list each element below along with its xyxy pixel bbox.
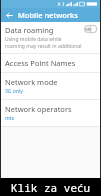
staticText: Data roaming — [5, 25, 54, 35]
button[interactable]: Back — [4, 10, 15, 21]
staticText: 3G only — [5, 88, 23, 95]
staticText: Network operators — [5, 104, 72, 114]
button[interactable]: Network operators — [1, 100, 100, 126]
staticText: Access Point Names — [5, 58, 76, 68]
staticText: Network mode — [5, 77, 58, 87]
button[interactable]: Data roaming — [1, 22, 100, 53]
button[interactable]: Data roaming off — [84, 25, 97, 33]
button[interactable]: Network mode — [1, 73, 100, 99]
staticText: mts — [5, 115, 14, 122]
staticText: Klik za veću — [11, 180, 91, 195]
staticText: OFF — [85, 27, 92, 32]
button[interactable]: Access Point Names — [1, 54, 100, 72]
staticText: Using mobile data while roaming may resu… — [5, 36, 82, 50]
staticText: Mobile networks — [18, 10, 78, 20]
